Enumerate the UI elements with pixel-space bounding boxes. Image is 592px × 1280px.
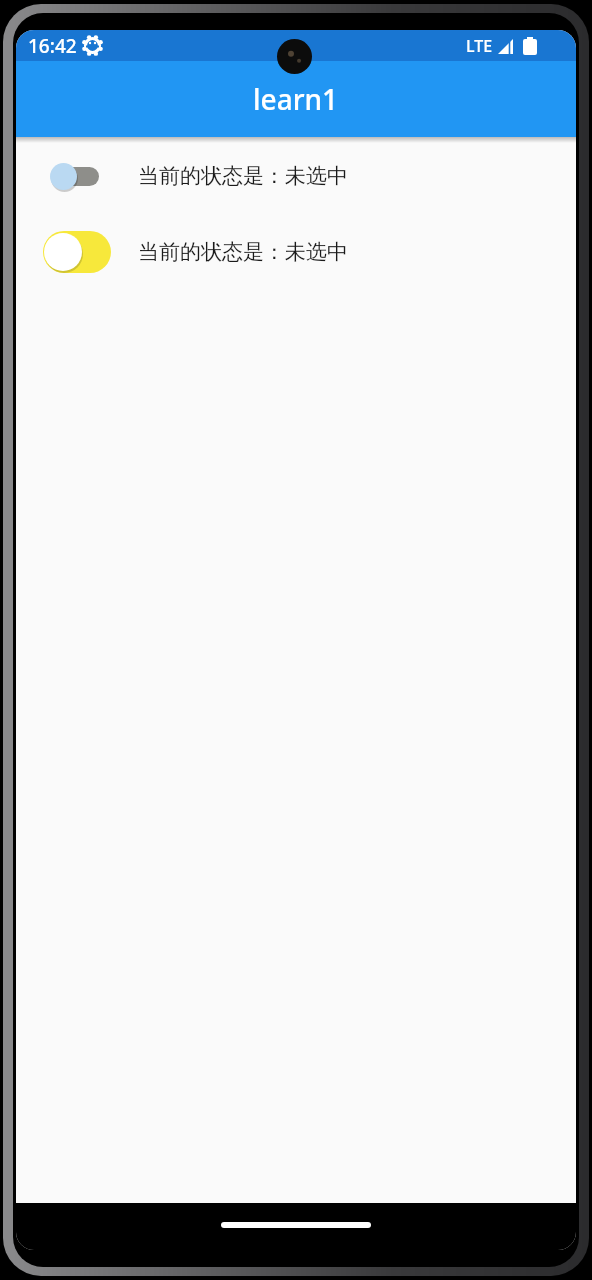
staticText: 当前的状态是：未选中: [138, 163, 348, 189]
button[interactable]: 当前的状态是：未选中: [50, 146, 348, 206]
button[interactable]: [43, 222, 111, 282]
staticText: 当前的状态是：未选中: [138, 239, 348, 265]
staticText: learn1: [253, 80, 339, 118]
staticText: 16:42: [28, 33, 77, 59]
staticText: LTE: [466, 35, 493, 57]
button[interactable]: 当前的状态是：未选中: [43, 222, 348, 282]
button[interactable]: [50, 146, 113, 206]
